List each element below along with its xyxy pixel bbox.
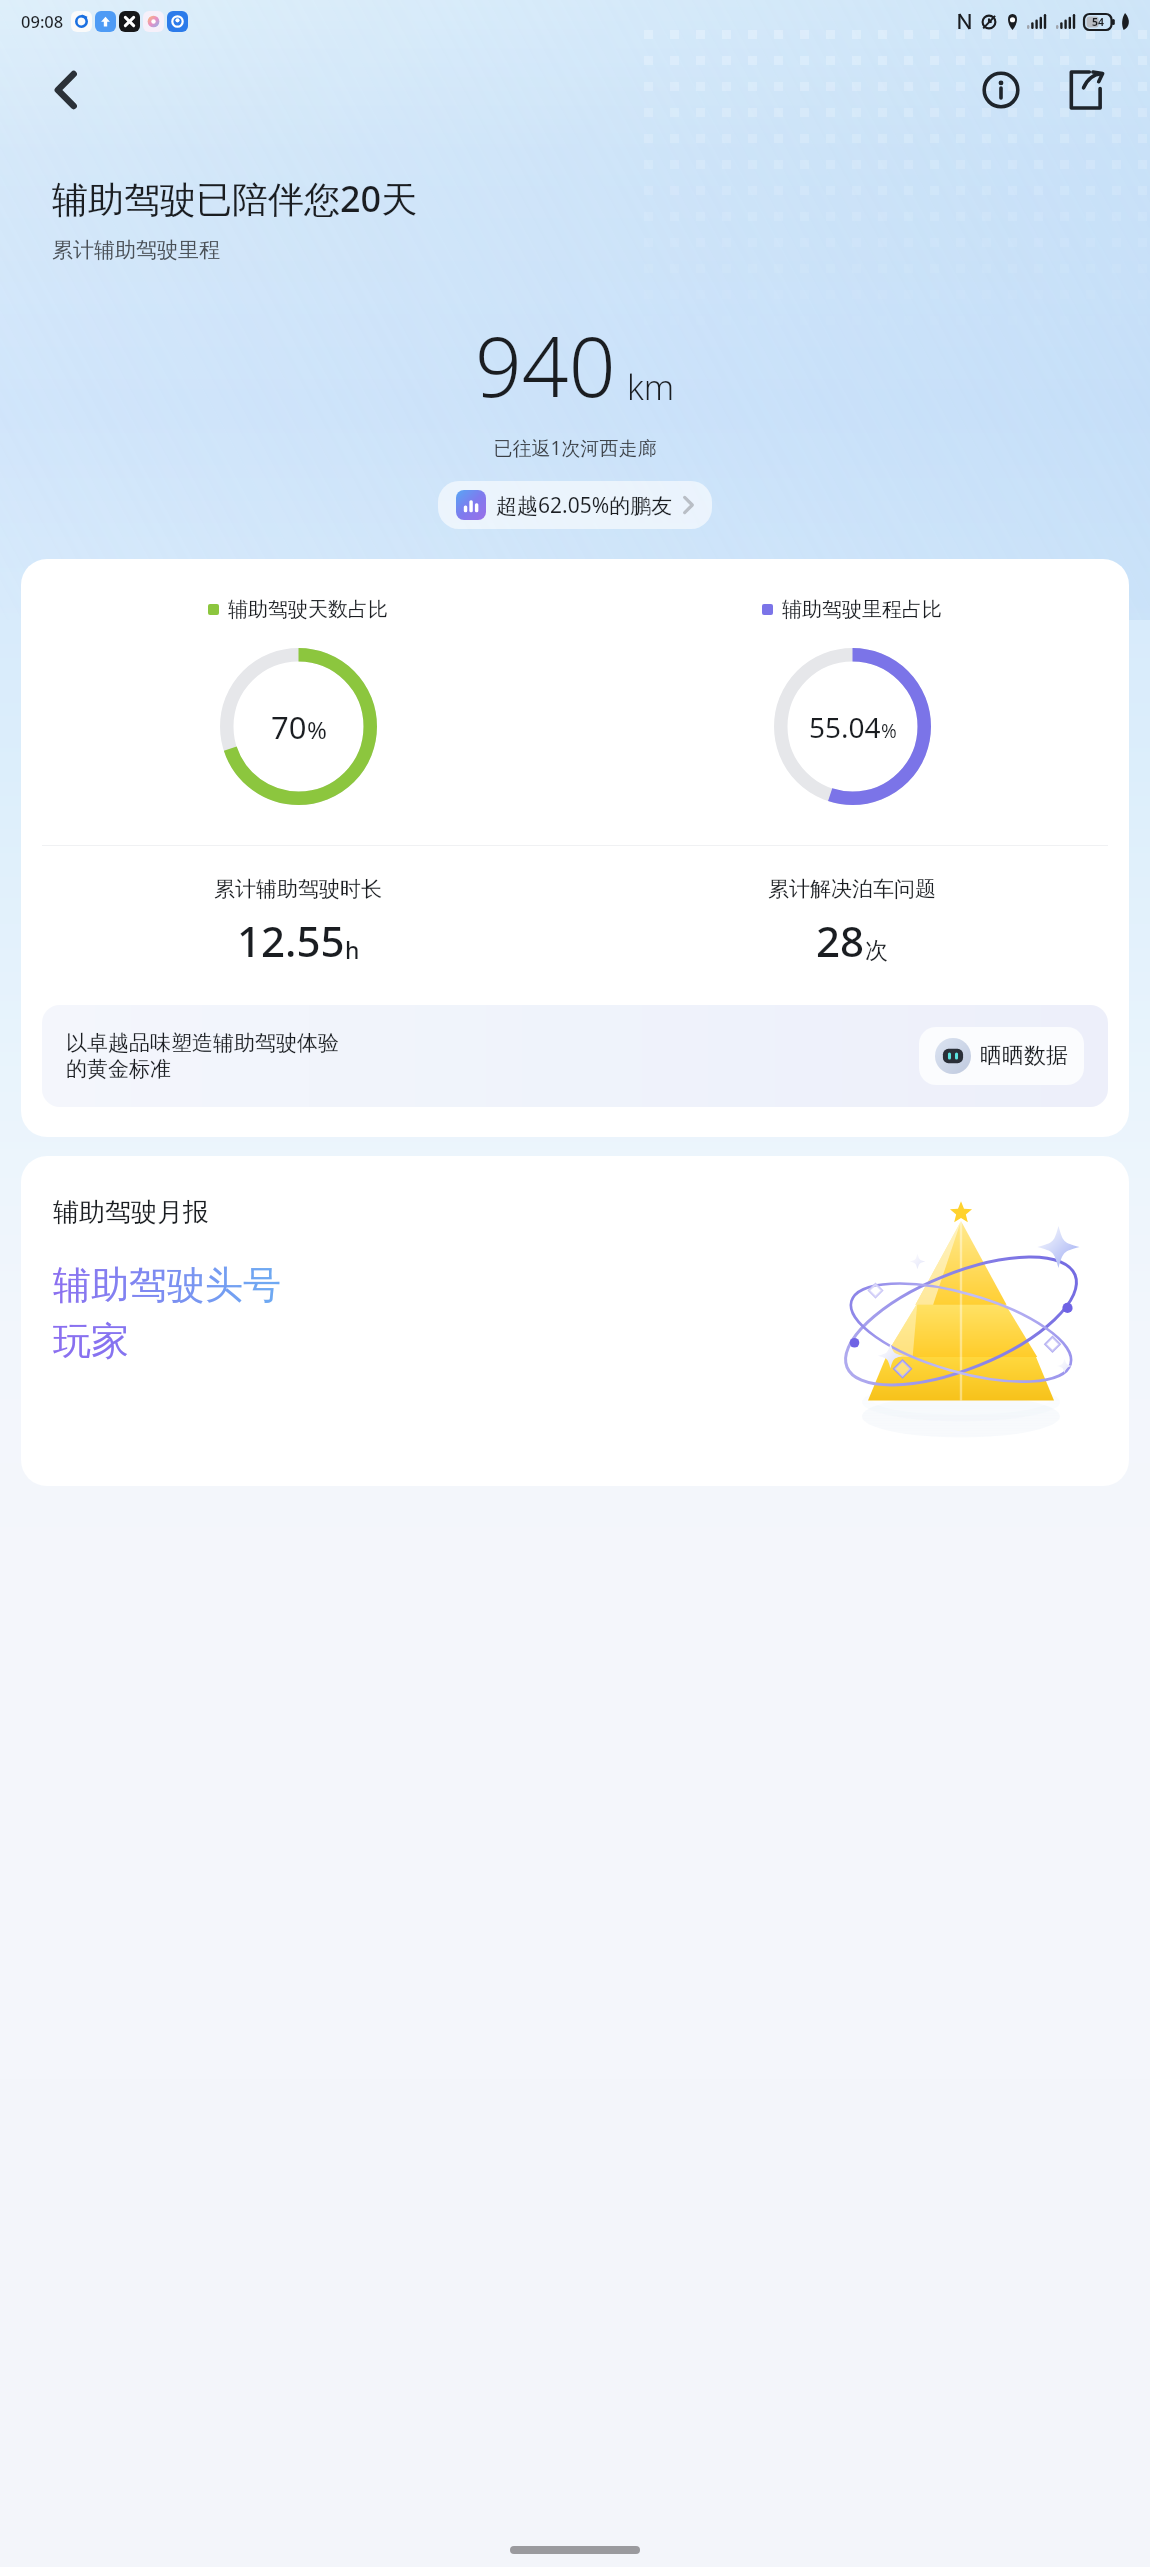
staticText: 已往返1次河西走廊 (0, 435, 1150, 461)
staticText: 超越62.05%的鹏友 (496, 491, 673, 520)
staticText: 累计辅助驾驶里程 (52, 237, 220, 263)
button[interactable]: 辅助驾驶月报 (21, 1156, 1129, 1486)
staticText: 940 (475, 309, 616, 421)
staticText: 晒晒数据 (980, 1042, 1068, 1070)
staticText: 以卓越品味塑造辅助驾驶体验 (66, 1030, 339, 1056)
staticText: 累计解决泊车问题 (768, 876, 936, 902)
button[interactable]: Share (1056, 61, 1114, 119)
staticText: % (881, 718, 897, 744)
button[interactable]: Back (38, 62, 94, 118)
button[interactable]: 晒晒数据 (919, 1027, 1084, 1085)
button[interactable]: Info (972, 61, 1030, 119)
staticText: 54 (1092, 15, 1105, 29)
staticText: 累计辅助驾驶时长 (214, 876, 382, 902)
staticText: 玩家 (53, 1317, 129, 1365)
button[interactable]: 以卓越品味塑造辅助驾驶体验 (42, 1005, 1108, 1107)
staticText: 辅助驾驶头号 (53, 1261, 281, 1309)
staticText: 辅助驾驶月报 (53, 1196, 209, 1229)
staticText: 的黄金标准 (66, 1056, 171, 1082)
staticText: 次 (865, 936, 888, 965)
staticText: 28 (816, 912, 865, 969)
button[interactable]: 超越62.05%的鹏友 (438, 481, 712, 529)
staticText: km (627, 364, 675, 410)
staticText: 09:08 (21, 10, 64, 32)
staticText: 12.55 (237, 912, 345, 969)
staticText: 70 (271, 706, 307, 748)
staticText: 辅助驾驶里程占比 (782, 597, 942, 622)
staticText: 55.04 (809, 708, 881, 746)
staticText: % (307, 713, 327, 746)
staticText: h (345, 934, 360, 965)
staticText: 辅助驾驶天数占比 (228, 597, 388, 622)
staticText: 辅助驾驶已陪伴您20天 (52, 174, 418, 223)
